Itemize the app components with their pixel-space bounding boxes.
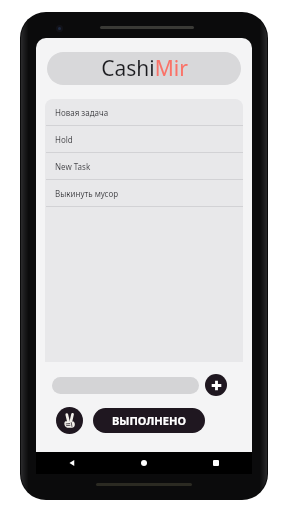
button[interactable]: Recent apps [180,452,252,474]
staticText: Новая задача [55,107,109,118]
button[interactable]: Выкинуть мусор [45,180,243,206]
button[interactable]: Новая задача [45,99,243,125]
staticText: ВЫПОЛНЕНО [112,413,186,428]
staticText: New Task [55,161,91,172]
button[interactable]: Add task [205,374,227,396]
staticText: CashiMir [101,54,188,83]
button[interactable]: Hold [45,126,243,152]
staticText: Выкинуть мусор [55,188,119,199]
button[interactable]: Home [108,452,180,474]
button[interactable]: CashiMir [47,52,241,85]
staticText: Hold [55,134,73,145]
button[interactable] [52,377,199,394]
button[interactable]: ВЫПОЛНЕНО [93,408,205,433]
button[interactable]: Victory [56,407,83,434]
button[interactable]: Back [36,452,108,474]
button[interactable]: New Task [45,153,243,179]
